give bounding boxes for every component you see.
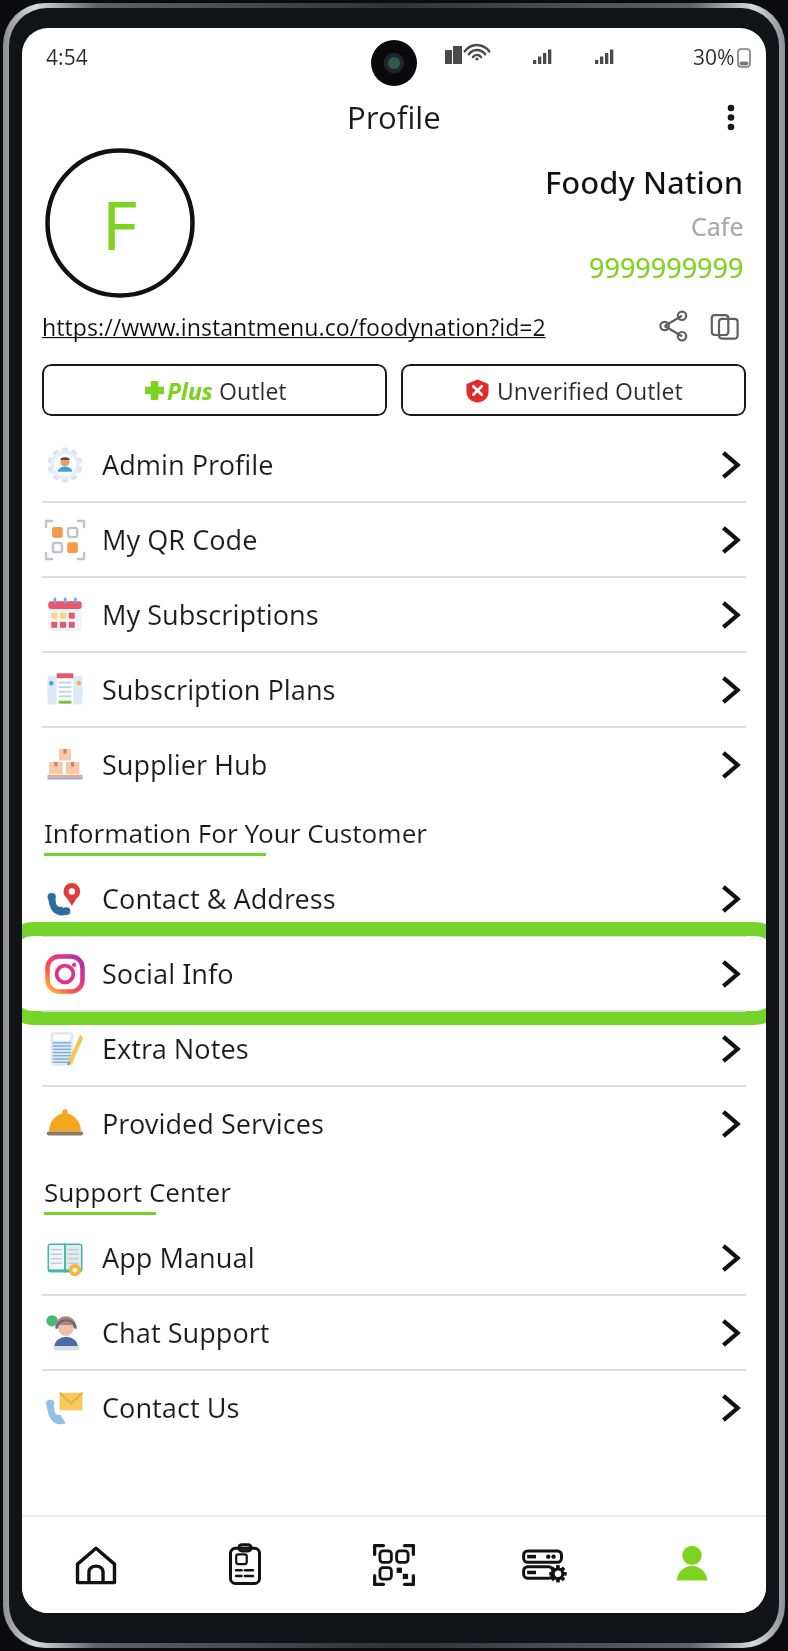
button[interactable]: Social Info [22, 937, 766, 1010]
staticText: Contact & Address [102, 880, 336, 917]
staticText: Foody Nation [545, 161, 744, 203]
staticText: F [102, 177, 138, 270]
staticText: Information For Your Customer [44, 815, 428, 850]
staticText: 4:54 [46, 43, 88, 72]
button[interactable]: Manage [468, 1517, 617, 1613]
button[interactable]: More options [708, 94, 754, 140]
staticText: 9999999999 [589, 249, 744, 286]
staticText: Profile [347, 96, 441, 138]
staticText: Extra Notes [102, 1030, 249, 1067]
staticText: 30% [693, 43, 735, 72]
button[interactable]: Contact Us [22, 1371, 766, 1444]
staticText: Unverified Outlet [497, 375, 683, 406]
button[interactable]: Provided Services [22, 1087, 766, 1160]
staticText: App Manual [102, 1239, 255, 1276]
staticText: Supplier Hub [102, 746, 268, 783]
staticText: Subscription Plans [102, 671, 336, 708]
button[interactable]: Profile [617, 1517, 766, 1613]
button[interactable]: Chat Support [22, 1296, 766, 1369]
staticText: Admin Profile [102, 446, 274, 483]
button[interactable]: Contact & Address [22, 862, 766, 935]
button[interactable]: Extra Notes [22, 1012, 766, 1085]
staticText: Provided Services [102, 1105, 324, 1142]
button[interactable]: Orders [170, 1517, 319, 1613]
button[interactable]: My QR Code [22, 503, 766, 576]
button[interactable]: Unverified Outlet [401, 364, 746, 416]
button[interactable]: Plus [42, 364, 387, 416]
staticText: Contact Us [102, 1389, 240, 1426]
button[interactable]: Copy link [702, 303, 748, 349]
button[interactable]: https://www.instantmenu.co/foodynation?i… [42, 311, 546, 342]
button[interactable]: Admin Profile [22, 428, 766, 501]
staticText: Support Center [44, 1174, 231, 1209]
button[interactable]: Home [22, 1517, 170, 1613]
button[interactable]: Supplier Hub [22, 728, 766, 801]
button[interactable]: My Subscriptions [22, 578, 766, 651]
staticText: Chat Support [102, 1314, 270, 1351]
staticText: Plus [167, 375, 213, 406]
staticText: My Subscriptions [102, 596, 319, 633]
staticText: Cafe [691, 209, 744, 243]
staticText: My QR Code [102, 521, 258, 558]
button[interactable]: Subscription Plans [22, 653, 766, 726]
button[interactable]: App Manual [22, 1221, 766, 1294]
button[interactable]: Scan QR [319, 1517, 468, 1613]
staticText: Outlet [213, 375, 287, 406]
button[interactable]: Share [650, 303, 696, 349]
staticText: Social Info [102, 955, 234, 992]
